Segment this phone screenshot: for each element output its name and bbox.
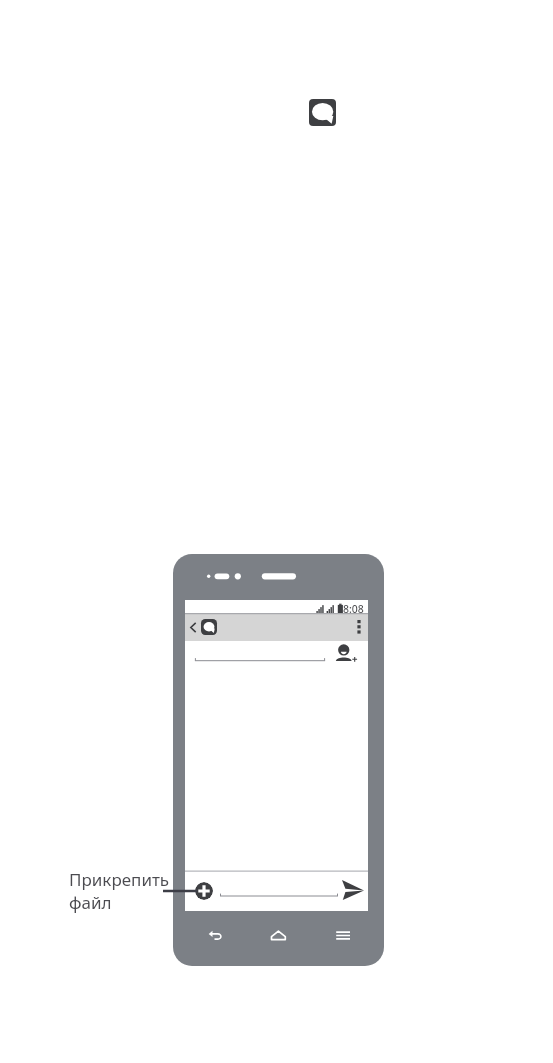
staticText: файл <box>69 891 112 914</box>
button[interactable]: Add recipient <box>185 641 368 667</box>
button[interactable]: Send <box>342 880 364 900</box>
staticText: 8:08 <box>343 602 364 615</box>
button[interactable]: More options <box>350 613 368 641</box>
button[interactable]: Messaging app icon <box>309 99 336 126</box>
button[interactable]: Messaging <box>201 619 217 635</box>
button[interactable]: Attach file <box>195 882 213 900</box>
staticText: Прикрепить <box>69 868 170 891</box>
button[interactable]: Back <box>185 613 201 641</box>
